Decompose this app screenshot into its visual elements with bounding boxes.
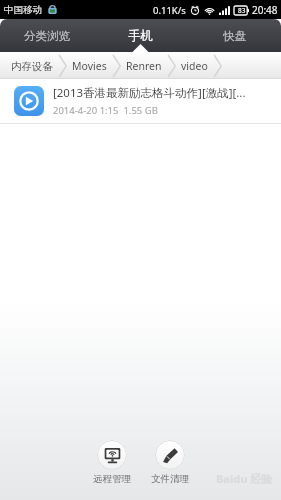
button[interactable]: Remote management [91,438,133,487]
button[interactable]: [2013香港最新励志格斗动作][激战][... [0,79,281,123]
staticText: 内存设备 [11,60,53,73]
staticText: Baidu 经验 [216,471,273,486]
staticText: 文件清理 [151,473,189,485]
staticText: Renren [126,59,162,73]
button[interactable]: Movies [67,57,112,75]
staticText: Movies [72,59,107,73]
button[interactable]: 内存设备 [6,58,58,75]
button[interactable]: File cleanup [149,438,191,487]
staticText: 83 [238,6,246,15]
staticText: 中国移动 [4,4,42,16]
staticText: video [181,59,208,73]
staticText: 快盘 [223,29,246,43]
button[interactable]: 手机 [93,19,187,52]
button[interactable]: video [176,57,213,75]
staticText: 0.11K/s [153,4,186,17]
button[interactable]: 快盘 [187,19,281,52]
staticText: 远程管理 [93,473,131,485]
staticText: 20:48 [252,3,278,17]
staticText: 分类浏览 [24,29,70,43]
staticText: [2013香港最新励志格斗动作][激战][... [53,85,246,101]
staticText: 手机 [128,28,153,44]
button[interactable]: Renren [121,57,167,75]
button[interactable]: 分类浏览 [0,19,93,52]
staticText: 2014-4-20 1:15 1.55 GB [53,104,158,117]
